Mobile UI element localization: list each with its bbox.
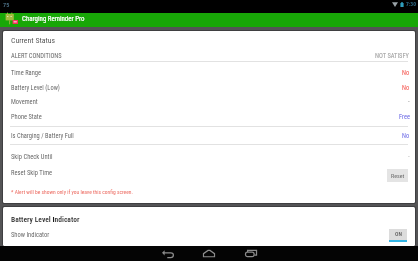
staticText: * Alert will be shown only if you leave … bbox=[11, 189, 133, 195]
staticText: Show Indicator bbox=[11, 231, 50, 239]
staticText: 7:30 bbox=[406, 1, 417, 8]
staticText: Time Range bbox=[11, 69, 41, 77]
staticText: Is Charging / Battery Full bbox=[11, 132, 74, 140]
button[interactable]: Reset Skip Time bbox=[3, 165, 415, 180]
button[interactable]: Recent apps bbox=[230, 246, 271, 261]
staticText: No bbox=[402, 132, 410, 140]
staticText: Skip Check Until bbox=[11, 153, 53, 161]
staticText: Movement bbox=[11, 98, 38, 106]
staticText: Current Status bbox=[11, 36, 56, 45]
staticText: Phone State bbox=[11, 113, 42, 121]
button[interactable]: Movement bbox=[3, 95, 415, 109]
button[interactable]: Phone State bbox=[3, 110, 415, 124]
staticText: NOT SATISFY bbox=[375, 52, 409, 60]
staticText: Free bbox=[399, 113, 410, 121]
staticText: Battery Level Indicator bbox=[11, 215, 80, 224]
button[interactable]: Is Charging / Battery Full bbox=[3, 129, 415, 143]
staticText: Reset bbox=[391, 172, 405, 179]
button[interactable]: Reset bbox=[387, 169, 408, 182]
button[interactable]: Time Range bbox=[3, 66, 415, 80]
staticText: Reset Skip Time bbox=[11, 169, 53, 177]
staticText: ON bbox=[395, 231, 402, 238]
staticText: No bbox=[402, 84, 410, 92]
staticText: - bbox=[408, 98, 410, 106]
button[interactable]: Show Indicator bbox=[3, 226, 415, 244]
staticText: Charging Reminder Pro bbox=[22, 15, 85, 23]
staticText: ALERT CONDITIONS bbox=[11, 52, 62, 60]
button[interactable]: Back bbox=[147, 246, 188, 261]
staticText: No bbox=[402, 69, 410, 77]
button[interactable]: Home bbox=[188, 246, 229, 261]
button[interactable]: Battery Level (Low) bbox=[3, 81, 415, 95]
staticText: Battery Level (Low) bbox=[11, 84, 60, 92]
staticText: - bbox=[408, 153, 410, 161]
button[interactable]: Show Indicator toggle bbox=[389, 229, 407, 242]
button[interactable]: Skip Check Until bbox=[3, 150, 415, 164]
staticText: 75 bbox=[3, 1, 10, 8]
